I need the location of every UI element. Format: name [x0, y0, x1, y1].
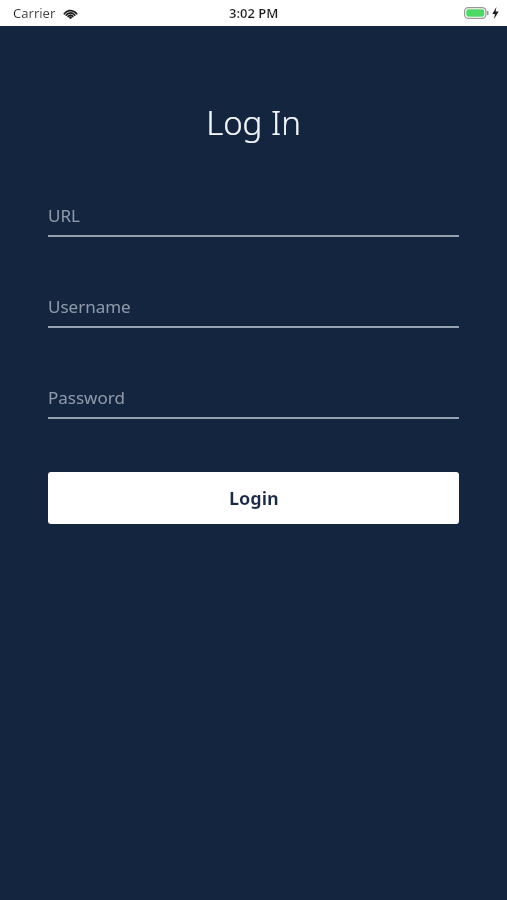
- button[interactable]: Password: [48, 386, 459, 419]
- button[interactable]: Login: [48, 472, 459, 524]
- staticText: Log In: [0, 100, 507, 145]
- button[interactable]: Username: [48, 295, 459, 328]
- staticText: Login: [229, 486, 279, 511]
- staticText: 3:02 PM: [229, 4, 279, 22]
- staticText: Password: [48, 386, 125, 409]
- button[interactable]: URL: [48, 204, 459, 237]
- staticText: URL: [48, 204, 80, 227]
- staticText: Username: [48, 295, 131, 318]
- staticText: Carrier: [13, 4, 56, 22]
